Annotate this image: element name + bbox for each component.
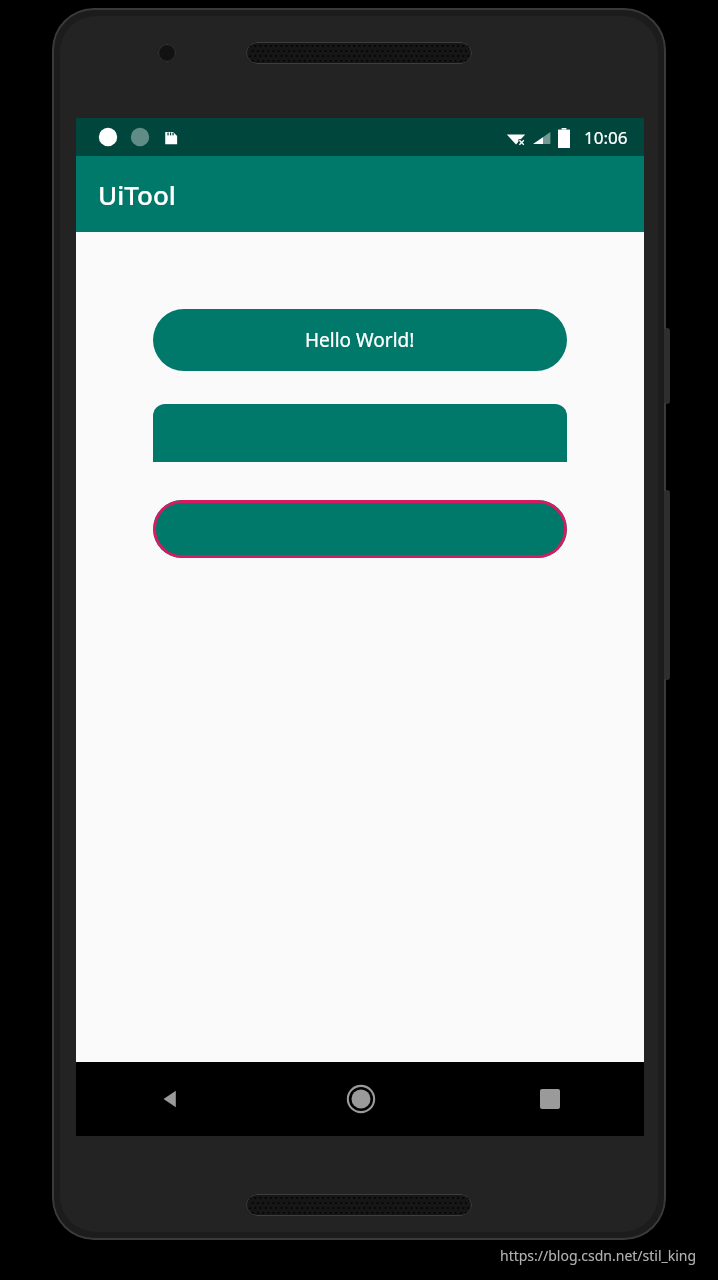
button[interactable]: Back xyxy=(76,1062,266,1136)
button[interactable]: Recent apps xyxy=(455,1062,644,1136)
staticText: https://blog.csdn.net/stil_king xyxy=(500,1246,697,1265)
staticText: 10:06 xyxy=(584,126,628,149)
button[interactable]: Home xyxy=(266,1062,455,1136)
staticText: Hello World! xyxy=(305,327,415,353)
button[interactable]: Hello World! xyxy=(153,309,567,371)
staticText: UiTool xyxy=(98,177,176,212)
button[interactable]: Outlined button xyxy=(153,500,567,558)
button[interactable]: Flat top button xyxy=(153,404,567,462)
